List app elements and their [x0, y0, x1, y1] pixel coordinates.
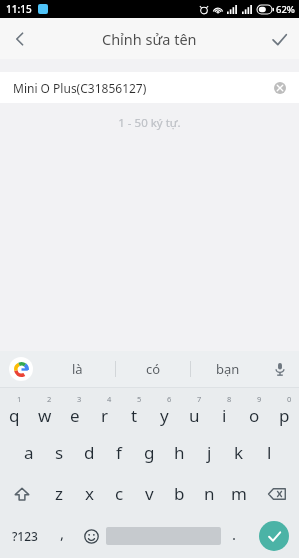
button[interactable]: ?123	[0, 514, 49, 558]
staticText: j	[207, 441, 212, 464]
staticText: q	[9, 404, 20, 427]
button[interactable]: m	[224, 473, 254, 514]
staticText: u	[189, 404, 200, 427]
staticText: 9	[257, 394, 262, 404]
staticText: h	[174, 441, 185, 464]
staticText: c	[115, 482, 124, 505]
button[interactable]: v	[134, 473, 164, 514]
staticText: Mini O Plus(C31856127)	[13, 80, 147, 96]
staticText: 2	[47, 394, 52, 404]
button[interactable]: 5	[119, 388, 149, 432]
button[interactable]: s	[44, 432, 74, 473]
staticText: 7	[197, 394, 202, 404]
staticText: r	[101, 404, 109, 427]
button[interactable]: Back	[0, 19, 40, 59]
staticText: bạn	[216, 360, 240, 378]
staticText: ?123	[12, 528, 38, 544]
button[interactable]: Emoji	[76, 514, 106, 558]
staticText: 1	[17, 394, 22, 404]
button[interactable]: bạn	[191, 351, 265, 387]
button[interactable]: 2	[29, 388, 59, 432]
button[interactable]: d	[74, 432, 104, 473]
button[interactable]: Shift	[0, 473, 44, 514]
staticText: 4	[107, 394, 112, 404]
button[interactable]: Confirm	[259, 19, 299, 59]
staticText: l	[267, 441, 272, 464]
staticText: .	[232, 524, 237, 544]
staticText: 62%	[276, 3, 295, 16]
button[interactable]: b	[164, 473, 194, 514]
button[interactable]: n	[194, 473, 224, 514]
button[interactable]: Space	[106, 514, 221, 558]
staticText: k	[234, 441, 244, 464]
button[interactable]: 7	[179, 388, 209, 432]
button[interactable]: c	[104, 473, 134, 514]
button[interactable]: 1	[0, 388, 29, 432]
button[interactable]: g	[134, 432, 164, 473]
button[interactable]: l	[254, 432, 284, 473]
staticText: n	[204, 482, 215, 505]
staticText: Chỉnh sửa tên	[102, 29, 197, 49]
staticText: f	[116, 441, 122, 464]
button[interactable]: 9	[239, 388, 269, 432]
staticText: d	[84, 441, 95, 464]
button[interactable]: Clear text	[269, 77, 291, 99]
staticText: có	[146, 360, 161, 378]
button[interactable]: x	[74, 473, 104, 514]
staticText: 11:15	[6, 2, 32, 16]
staticText: x	[85, 482, 94, 505]
staticText: z	[55, 482, 63, 505]
staticText: 3	[77, 394, 82, 404]
staticText: w	[38, 404, 52, 427]
button[interactable]: f	[104, 432, 134, 473]
button[interactable]: Comma	[49, 514, 76, 558]
button[interactable]: 6	[149, 388, 179, 432]
staticText: 6	[167, 394, 172, 404]
button[interactable]: 4	[89, 388, 119, 432]
button[interactable]: a	[14, 432, 44, 473]
button[interactable]: h	[164, 432, 194, 473]
staticText: y	[160, 404, 169, 427]
button[interactable]: z	[44, 473, 74, 514]
button[interactable]: Voice input	[267, 356, 293, 382]
staticText: là	[72, 360, 83, 378]
staticText: 5	[137, 394, 142, 404]
button[interactable]: Backspace	[254, 473, 299, 514]
button[interactable]: là	[40, 351, 115, 387]
button[interactable]: Period	[221, 514, 248, 558]
button[interactable]: 0	[269, 388, 299, 432]
button[interactable]: có	[116, 351, 190, 387]
staticText: ,	[60, 523, 65, 543]
staticText: p	[279, 404, 290, 427]
staticText: v	[145, 482, 154, 505]
staticText: b	[174, 482, 185, 505]
staticText: i	[222, 404, 227, 427]
staticText: a	[24, 441, 34, 464]
staticText: e	[70, 404, 80, 427]
button[interactable]: 8	[209, 388, 239, 432]
staticText: m	[231, 482, 247, 505]
button[interactable]: k	[224, 432, 254, 473]
staticText: 1 - 50 ký tự.	[0, 115, 299, 131]
button[interactable]: Google	[8, 356, 34, 382]
staticText: s	[55, 441, 64, 464]
staticText: t	[131, 404, 138, 427]
button[interactable]: j	[194, 432, 224, 473]
staticText: 0	[287, 394, 292, 404]
button[interactable]: Enter	[248, 514, 299, 558]
staticText: 8	[227, 394, 232, 404]
staticText: o	[249, 404, 260, 427]
staticText: g	[144, 441, 155, 464]
button[interactable]: 3	[59, 388, 89, 432]
